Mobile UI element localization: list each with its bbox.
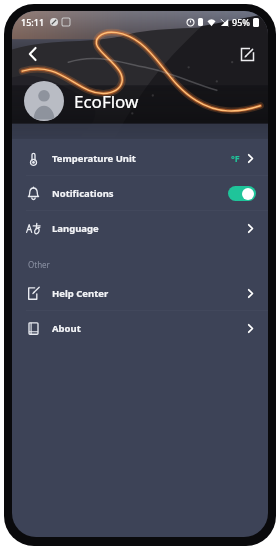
staticText: 15:11	[21, 16, 45, 28]
staticText: Temperature Unit	[52, 152, 136, 165]
button[interactable]: Edit profile	[230, 37, 264, 71]
button[interactable]: Help Center	[12, 276, 268, 310]
staticText: EcoFlow	[74, 90, 139, 113]
button[interactable]: About	[12, 311, 268, 345]
staticText: About	[52, 322, 81, 335]
button[interactable]: Notifications toggle, on	[228, 186, 256, 201]
button[interactable]: Back	[16, 37, 50, 71]
staticText: 95%	[232, 16, 250, 28]
staticText: Notifications	[52, 187, 114, 200]
staticText: Help Center	[52, 287, 109, 300]
staticText: Other	[28, 259, 50, 270]
staticText: Language	[52, 222, 99, 235]
button[interactable]: EcoFlow	[24, 81, 139, 121]
button[interactable]: Notifications	[12, 176, 268, 210]
button[interactable]: Language	[12, 211, 268, 245]
button[interactable]: Temperature Unit	[12, 141, 268, 175]
staticText: °F	[231, 152, 240, 164]
